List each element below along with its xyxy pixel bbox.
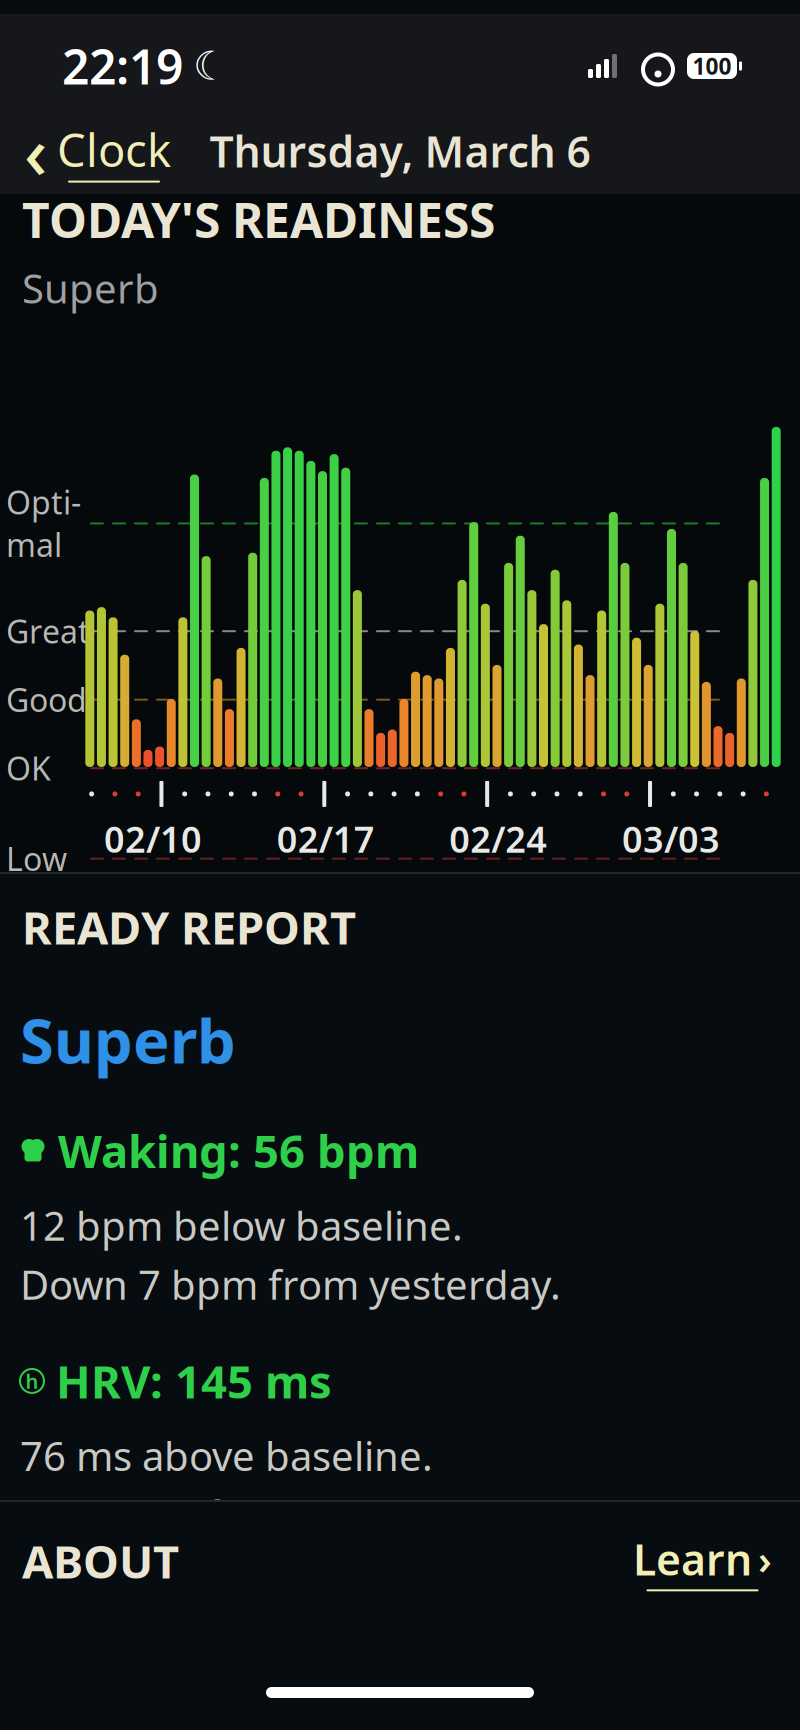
staticText: 12 bpm below baseline. <box>20 1199 463 1252</box>
staticText: ☾ <box>193 43 229 89</box>
staticText: ‹ <box>24 103 47 199</box>
staticText: Waking: 56 bpm <box>58 1120 419 1181</box>
staticText: READY REPORT <box>22 897 356 957</box>
staticText: Good <box>6 678 87 721</box>
staticText: Great <box>6 610 90 652</box>
staticText: 02/24 <box>449 815 547 863</box>
staticText: Low <box>6 837 67 880</box>
staticText: 02/10 <box>104 815 202 863</box>
staticText: 100 <box>692 51 731 81</box>
staticText: OK <box>6 747 51 789</box>
staticText: Down 7 bpm from yesterday. <box>20 1258 561 1311</box>
staticText: Superb <box>20 999 236 1080</box>
staticText: 02/17 <box>277 815 375 863</box>
staticText: 22:19 <box>62 34 183 98</box>
button[interactable]: Learn <box>619 1523 786 1599</box>
staticText: TODAY'S READINESS <box>22 188 495 251</box>
staticText: Learn <box>633 1531 752 1587</box>
staticText: Optimal <box>6 481 81 566</box>
staticText: ABOUT <box>22 1531 179 1591</box>
staticText: › <box>758 1532 772 1585</box>
staticText: Superb <box>22 261 159 314</box>
button[interactable]: ‹ <box>6 95 189 207</box>
staticText: 03/03 <box>622 815 720 863</box>
staticText: h <box>25 1368 38 1394</box>
staticText: 76 ms above baseline. <box>20 1429 433 1482</box>
staticText: Up 73 ms from yesterday. <box>20 1488 499 1541</box>
staticText: Clock <box>57 119 171 180</box>
staticText: HRV: 145 ms <box>56 1351 332 1411</box>
staticText: Thursday, March 6 <box>209 123 590 179</box>
